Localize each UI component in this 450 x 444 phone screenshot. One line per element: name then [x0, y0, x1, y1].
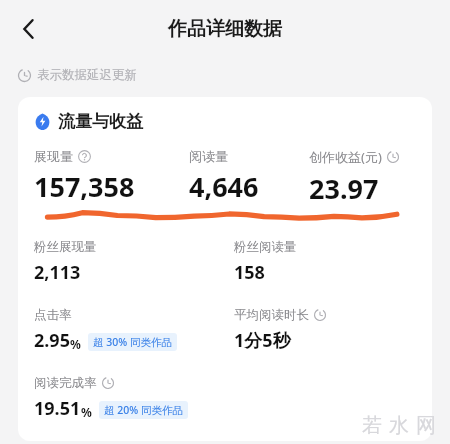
staticText: 23.97 — [309, 170, 379, 207]
staticText: 点击率 — [34, 307, 72, 323]
staticText: 若 — [362, 413, 382, 438]
staticText: 2.95 — [34, 328, 70, 353]
staticText: 阅读完成率 — [34, 375, 97, 391]
staticText: 作品详细数据 — [168, 17, 282, 41]
staticText: 平均阅读时长 — [234, 307, 309, 323]
staticText: 表示数据延迟更新 — [37, 67, 137, 83]
staticText: % — [70, 336, 81, 352]
staticText: 展现量 — [34, 148, 73, 164]
staticText: 2,113 — [34, 260, 81, 285]
staticText: 粉丝阅读量 — [234, 239, 297, 255]
staticText: 超 30% 同类作品 — [93, 335, 172, 349]
staticText: 网 — [416, 413, 436, 438]
staticText: % — [81, 404, 92, 420]
staticText: 创作收益(元) — [309, 148, 382, 166]
staticText: 阅读量 — [189, 148, 228, 164]
staticText: 超 20% 同类作品 — [104, 403, 183, 417]
staticText: 4,646 — [189, 168, 259, 205]
staticText: 粉丝展现量 — [34, 239, 97, 255]
button[interactable]: Back — [6, 6, 52, 52]
staticText: 流量与收益 — [58, 111, 143, 132]
staticText: 158 — [234, 260, 265, 285]
staticText: 157,358 — [34, 168, 135, 205]
staticText: 1分5秒 — [234, 328, 291, 353]
staticText: 19.51 — [34, 396, 81, 421]
staticText: 水 — [389, 413, 409, 438]
